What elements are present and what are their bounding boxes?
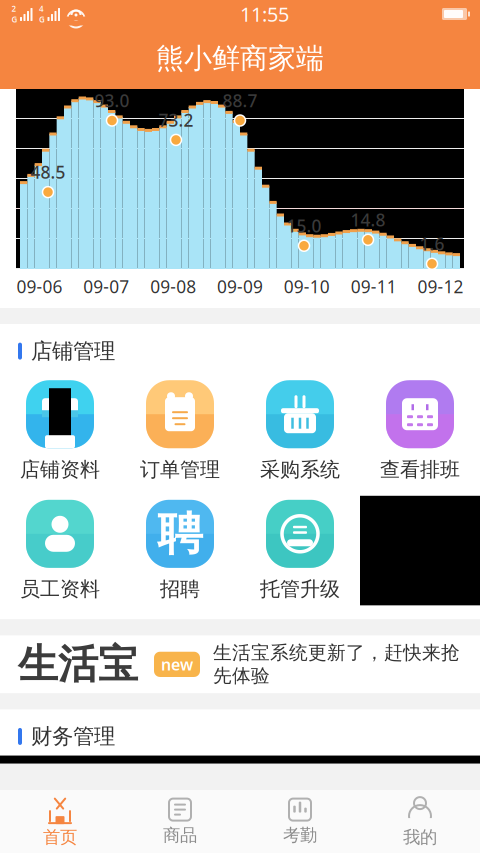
button[interactable]: 首页 [0,790,120,853]
staticText: 招聘 [160,577,200,601]
button[interactable]: 我的 [360,790,480,853]
button[interactable]: 聘 [120,496,240,605]
staticText: 09-09 [217,275,263,298]
staticText: 09-10 [284,275,330,298]
staticText: 11:55 [240,1,289,27]
button[interactable]: 店铺资料 [0,376,120,486]
staticText: 店铺管理 [31,338,115,364]
staticText: 09-12 [418,275,464,298]
button[interactable]: 采购系统 [240,376,360,486]
button[interactable]: 商品 [120,792,240,852]
staticText: 托管升级 [260,577,340,601]
staticText: 93.0 [94,89,129,112]
staticText: 聘 [157,506,202,562]
staticText: 店铺资料 [20,457,100,482]
staticText: 生活宝 [18,640,138,689]
staticText: 14.8 [350,208,385,231]
staticText: 财务管理 [31,723,115,750]
button[interactable]: 考勤 [240,792,360,852]
staticText: 4G [39,3,45,25]
staticText: 73.2 [158,108,193,131]
staticText: 48.5 [30,161,65,184]
staticText: new [161,654,193,675]
staticText: 熊小鲜商家端 [156,41,324,76]
button[interactable]: 订单管理 [120,376,240,486]
staticText: 我的 [403,827,437,848]
staticText: 2G [11,3,17,25]
staticText: 09-11 [351,275,397,298]
button[interactable]: 员工资料 [0,496,120,605]
button[interactable]: 托管升级 [240,496,360,605]
staticText: 首页 [43,827,77,848]
staticText: 1.6 [419,232,444,255]
staticText: 员工资料 [20,577,100,601]
staticText: 查看排班 [380,457,460,482]
staticText: 订单管理 [140,457,220,482]
staticText: 生活宝系统更新了，赶快来抢先体验 [213,641,460,687]
staticText: 考勤 [283,825,317,846]
button[interactable]: 生活宝 [0,635,480,693]
button[interactable]: 查看排班 [360,376,480,486]
staticText: 商品 [163,825,197,846]
staticText: 采购系统 [260,457,340,482]
staticText: 09-07 [83,275,129,298]
staticText: 15.0 [286,214,321,237]
staticText: 88.7 [222,89,257,112]
staticText: 09-06 [16,275,62,298]
staticText: 09-08 [150,275,196,298]
